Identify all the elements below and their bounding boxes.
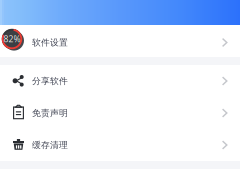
button[interactable]: 缓存清理 — [0, 129, 240, 161]
button[interactable]: 分享软件 — [0, 65, 240, 97]
staticText: 缓存清理 — [32, 139, 68, 151]
button[interactable]: 82% — [0, 25, 240, 57]
staticText: 分享软件 — [32, 75, 68, 87]
button[interactable]: 免责声明 — [0, 97, 240, 129]
staticText: 82% — [3, 33, 20, 45]
staticText: 软件设置 — [32, 37, 68, 48]
staticText: 免责声明 — [32, 107, 68, 119]
